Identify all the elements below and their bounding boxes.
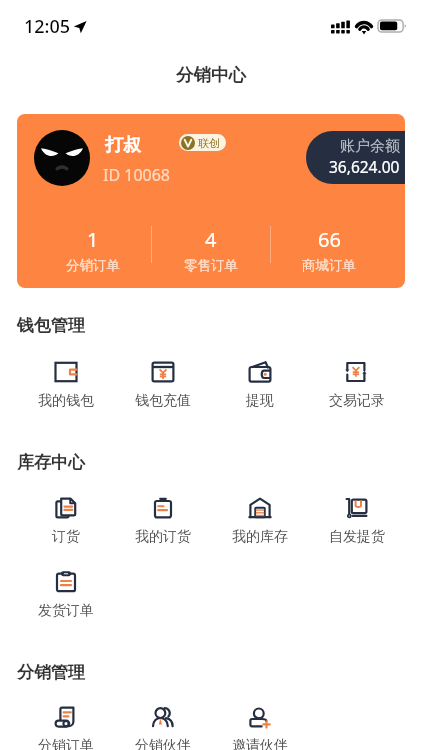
button[interactable]: 联创 xyxy=(181,134,220,151)
staticText: 账户余额 xyxy=(340,137,400,156)
other: Wi-Fi xyxy=(355,19,373,33)
staticText: 1 xyxy=(87,226,99,253)
button[interactable]: 分销订单 xyxy=(17,705,114,750)
staticText: 4 xyxy=(205,226,217,253)
staticText: 12:05 xyxy=(24,14,71,39)
staticText: 打叔 xyxy=(105,134,141,157)
staticText: 商城订单 xyxy=(302,257,356,274)
staticText: 交易记录 xyxy=(329,392,385,410)
staticText: 分销订单 xyxy=(38,737,94,750)
staticText: 发货订单 xyxy=(38,602,94,620)
button[interactable]: 交易记录 xyxy=(308,360,405,410)
staticText: 分销订单 xyxy=(66,257,120,274)
staticText: 我的库存 xyxy=(232,528,288,546)
button[interactable]: 分销伙伴 xyxy=(114,705,211,750)
staticText: 分销中心 xyxy=(176,64,246,86)
staticText: 钱包管理 xyxy=(17,315,85,336)
button[interactable]: 自发提货 xyxy=(308,496,405,546)
button[interactable]: 我的钱包 xyxy=(17,360,114,410)
button[interactable]: 我的订货 xyxy=(114,496,211,546)
staticText: 66 xyxy=(318,226,341,253)
button[interactable]: 邀请伙伴 xyxy=(211,705,308,750)
other: Battery xyxy=(378,20,406,32)
staticText: 自发提货 xyxy=(329,528,385,546)
staticText: 分销管理 xyxy=(17,662,85,683)
button[interactable]: 提现 xyxy=(211,360,308,410)
staticText: 订货 xyxy=(52,528,80,546)
staticText: 联创 xyxy=(198,136,220,150)
button[interactable]: 4 xyxy=(152,226,270,274)
other: Cellular signal xyxy=(331,20,350,34)
staticText: 邀请伙伴 xyxy=(232,737,288,750)
staticText: 库存中心 xyxy=(17,452,85,473)
button[interactable]: 订货 xyxy=(17,496,114,546)
staticText: 我的订货 xyxy=(135,528,191,546)
button[interactable]: 我的库存 xyxy=(211,496,308,546)
button[interactable]: 账户余额 xyxy=(306,131,405,184)
staticText: ID 10068 xyxy=(103,164,171,186)
button[interactable]: 发货订单 xyxy=(17,570,114,620)
staticText: 钱包充值 xyxy=(135,392,191,410)
staticText: 36,624.00 xyxy=(329,156,400,177)
button[interactable]: 账户余额 xyxy=(17,114,405,288)
button[interactable]: 1 xyxy=(34,226,152,274)
staticText: 零售订单 xyxy=(184,257,238,274)
staticText: 分销伙伴 xyxy=(135,737,191,750)
staticText: 提现 xyxy=(246,392,274,410)
button[interactable]: 66 xyxy=(270,226,388,274)
staticText: 我的钱包 xyxy=(38,392,94,410)
button[interactable]: 钱包充值 xyxy=(114,360,211,410)
